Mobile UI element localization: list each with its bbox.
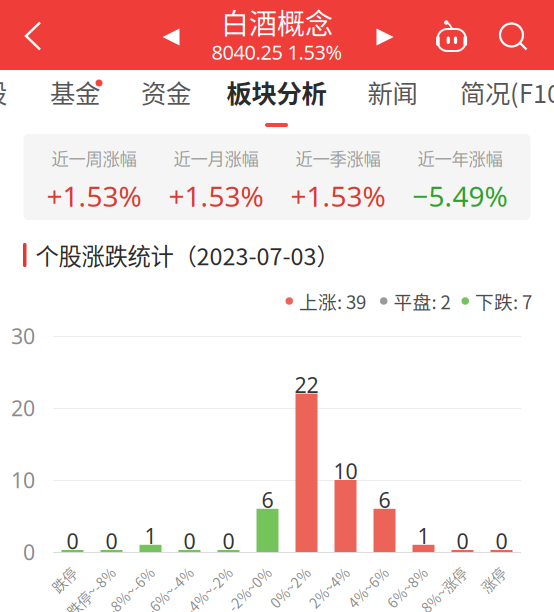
staticText: -8%~-6% (103, 588, 163, 608)
button[interactable]: 资金 (119, 70, 213, 130)
staticText: 0 (105, 527, 117, 555)
staticText: 股 (0, 74, 7, 110)
staticText: +1.53% (46, 177, 141, 215)
button[interactable]: 板块分析 (213, 70, 340, 130)
staticText: 10 (11, 466, 35, 494)
staticText: 30 (11, 322, 35, 350)
staticText: 0 (495, 527, 507, 555)
staticText: 平盘: 2 (393, 287, 450, 314)
staticText: 近一年涨幅 (417, 145, 502, 171)
staticText: +1.53% (168, 177, 263, 215)
button[interactable]: 简况(F10) (445, 70, 554, 130)
button[interactable]: 智能助手 (428, 8, 476, 66)
staticText: 0 (23, 538, 35, 566)
staticText: 4%~6% (347, 588, 397, 608)
staticText: 简况(F10) (460, 74, 554, 110)
button[interactable]: 新闻 (340, 70, 445, 130)
button[interactable]: 搜索 (489, 8, 537, 66)
staticText: 基金 (50, 74, 100, 110)
staticText: 2%~4% (308, 588, 358, 608)
staticText: 6 (378, 486, 390, 514)
staticText: 6 (261, 486, 273, 514)
staticText: 10 (333, 457, 357, 485)
staticText: 8040.25 1.53% (211, 39, 342, 65)
staticText: -2%~0% (225, 588, 280, 608)
staticText: 跌停 (57, 588, 85, 608)
staticText: 跌停~-8% (62, 588, 124, 608)
staticText: 0 (183, 527, 195, 555)
staticText: 下跌: 7 (475, 287, 532, 314)
staticText: 20 (11, 394, 35, 422)
staticText: 6%~8% (386, 588, 436, 608)
staticText: 8%~涨停 (418, 588, 475, 608)
staticText: 0 (222, 527, 234, 555)
staticText: 新闻 (367, 74, 417, 110)
staticText: 近一季涨幅 (295, 145, 380, 171)
staticText: 1 (144, 522, 156, 550)
staticText: 资金 (141, 74, 191, 110)
button[interactable]: 下一个板块 (362, 8, 408, 66)
staticText: 板块分析 (226, 74, 326, 110)
staticText: 涨停 (486, 588, 514, 608)
staticText: −5.49% (412, 177, 507, 215)
staticText: 近一周涨幅 (51, 145, 136, 171)
button[interactable]: 基金 (31, 70, 119, 130)
button[interactable]: 上一个板块 (148, 8, 194, 66)
staticText: 22 (294, 370, 318, 399)
staticText: 1 (417, 522, 429, 550)
staticText: 上涨: 39 (299, 287, 366, 314)
staticText: -6%~-4% (142, 588, 202, 608)
staticText: -4%~-2% (181, 588, 241, 608)
staticText: 个股涨跌统计（2023-07-03） (35, 238, 339, 272)
staticText: 0 (456, 527, 468, 555)
staticText: 近一月涨幅 (173, 145, 258, 171)
staticText: 白酒概念 (221, 2, 333, 42)
button[interactable]: 返回 (7, 5, 59, 67)
staticText: +1.53% (290, 177, 385, 215)
staticText: 0 (66, 527, 78, 555)
staticText: 0%~2% (269, 588, 319, 608)
